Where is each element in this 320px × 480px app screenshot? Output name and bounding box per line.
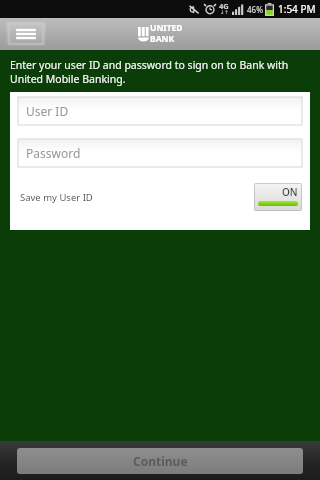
staticText: Continue [133, 453, 188, 469]
staticText: 46% [247, 4, 263, 15]
staticText: ON [282, 185, 298, 199]
staticText: Password [26, 145, 81, 161]
button[interactable]: Menu [6, 22, 46, 46]
button[interactable]: Continue [17, 448, 303, 474]
staticText: Save my User ID [20, 191, 93, 204]
button[interactable]: User ID [18, 97, 302, 125]
button[interactable]: Save my User ID on [254, 183, 302, 211]
button[interactable]: Password [18, 139, 302, 167]
staticText: 4G [219, 1, 229, 11]
staticText: Enter your user ID and password to sign … [10, 58, 289, 86]
staticText: UNITED [150, 22, 183, 34]
staticText: ↓↑ [220, 9, 229, 15]
staticText: BANK [150, 33, 175, 45]
staticText: User ID [26, 103, 69, 119]
staticText: 1:54 PM [278, 2, 316, 16]
